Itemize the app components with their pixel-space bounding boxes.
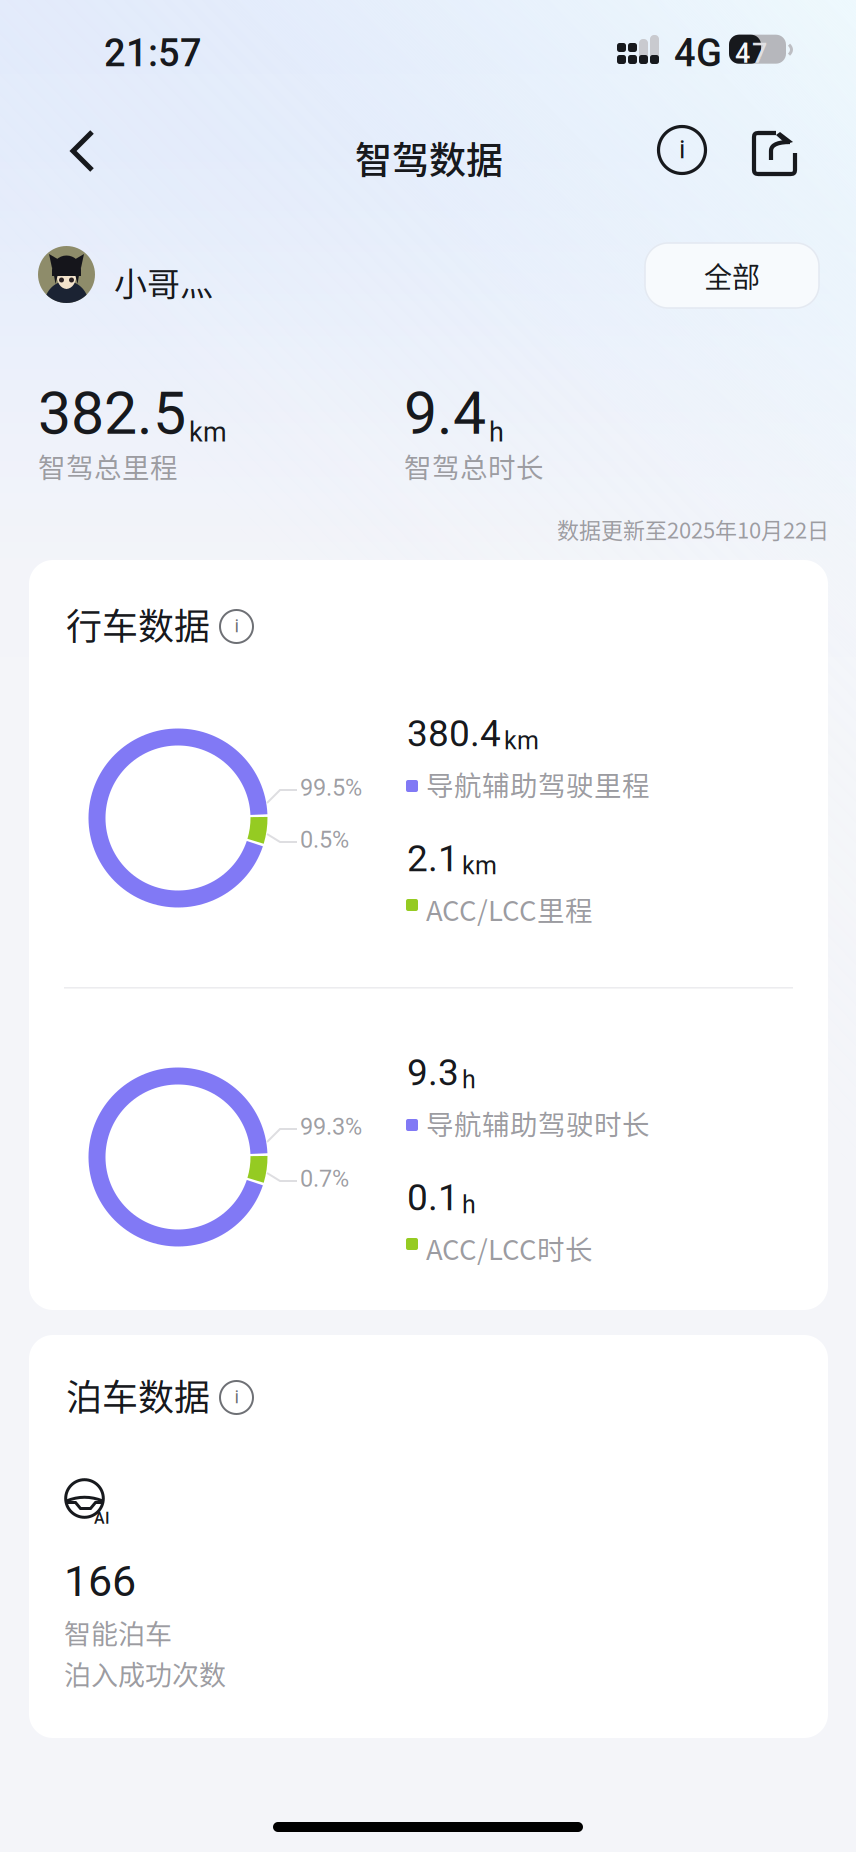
staticText: h [462, 1190, 476, 1219]
staticText: 智驾总时长 [404, 446, 544, 486]
staticText: 0.7% [300, 1165, 349, 1192]
staticText: km [504, 726, 539, 755]
staticText: h [462, 1065, 476, 1094]
staticText: AI [94, 1509, 110, 1528]
button[interactable]: Info [645, 113, 719, 187]
button[interactable]: Back [59, 119, 125, 183]
staticText: 0.1 [407, 1176, 459, 1219]
staticText: 2.1 [407, 837, 459, 880]
staticText: 166 [64, 1556, 136, 1606]
staticText: 99.5% [300, 774, 362, 801]
staticText: i [234, 615, 238, 637]
staticText: 数据更新至2025年10月22日 [557, 513, 829, 545]
staticText: 99.3% [300, 1113, 362, 1140]
staticText: 泊车数据 [66, 1369, 210, 1421]
staticText: 380.4 [407, 712, 501, 755]
staticText: 导航辅助驾驶里程 [426, 764, 650, 804]
staticText: 21:57 [104, 31, 202, 75]
staticText: i [234, 1386, 238, 1408]
staticText: 智驾数据 [355, 131, 503, 185]
staticText: ACC/LCC里程 [426, 889, 593, 929]
staticText: 0.5% [300, 826, 349, 853]
staticText: 9.4 [404, 379, 486, 448]
staticText: 9.3 [407, 1051, 459, 1094]
staticText: 智能泊车 [64, 1613, 172, 1652]
staticText: 行车数据 [66, 598, 210, 650]
button[interactable]: 全部 [645, 243, 819, 308]
staticText: 导航辅助驾驶时长 [426, 1103, 650, 1143]
staticText: 4G [674, 31, 722, 75]
staticText: 泊入成功次数 [64, 1654, 226, 1693]
staticText: 全部 [704, 255, 760, 296]
staticText: ACC/LCC时长 [426, 1228, 593, 1268]
staticText: h [489, 416, 504, 448]
staticText: km [189, 416, 227, 448]
staticText: 智驾总里程 [38, 446, 178, 486]
button[interactable]: Share [745, 124, 805, 184]
staticText: km [462, 851, 497, 880]
staticText: 4 [735, 38, 750, 69]
staticText: 7 [752, 38, 767, 69]
staticText: i [679, 134, 685, 165]
staticText: 382.5 [38, 379, 186, 448]
staticText: 小哥灬 [114, 258, 213, 306]
